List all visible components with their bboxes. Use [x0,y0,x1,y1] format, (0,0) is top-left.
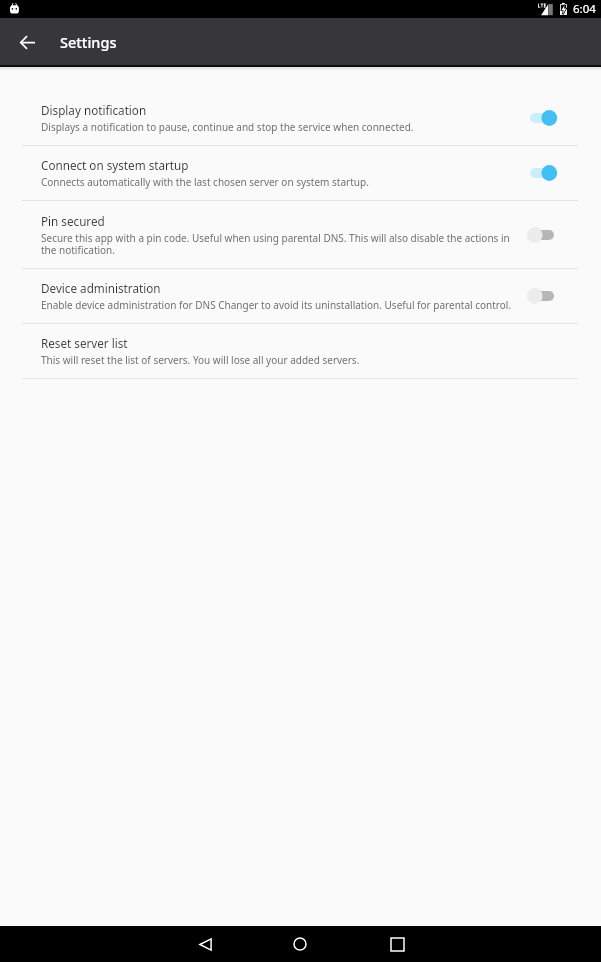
button[interactable]: Display notification [0,91,601,145]
staticText: Connect on system startup [41,157,189,173]
staticText: Reset server list [41,335,128,351]
staticText: Displays a notification to pause, contin… [41,120,414,134]
button[interactable]: Toggle off [529,283,555,309]
button[interactable]: Back [9,24,45,60]
staticText: Device administration [41,280,161,296]
staticText: 6:04 [573,1,596,17]
button[interactable]: Connect on system startup [0,146,601,200]
staticText: Secure this app with a pin code. Useful … [41,231,513,257]
button[interactable]: Pin secured [0,201,601,268]
button[interactable]: Recents [373,926,421,962]
button[interactable]: Toggle off [529,222,555,248]
button[interactable]: Reset server list [0,324,601,378]
button[interactable]: Toggle on [529,105,555,131]
button[interactable]: Device administration [0,269,601,323]
staticText: Enable device administration for DNS Cha… [41,298,512,312]
button[interactable]: Back [181,926,229,962]
button[interactable]: Home [276,926,324,962]
staticText: Display notification [41,102,147,118]
staticText: This will reset the list of servers. You… [41,353,360,367]
staticText: Settings [60,32,117,52]
staticText: Pin secured [41,213,105,229]
button[interactable]: Toggle on [529,160,555,186]
staticText: Connects automatically with the last cho… [41,175,369,189]
